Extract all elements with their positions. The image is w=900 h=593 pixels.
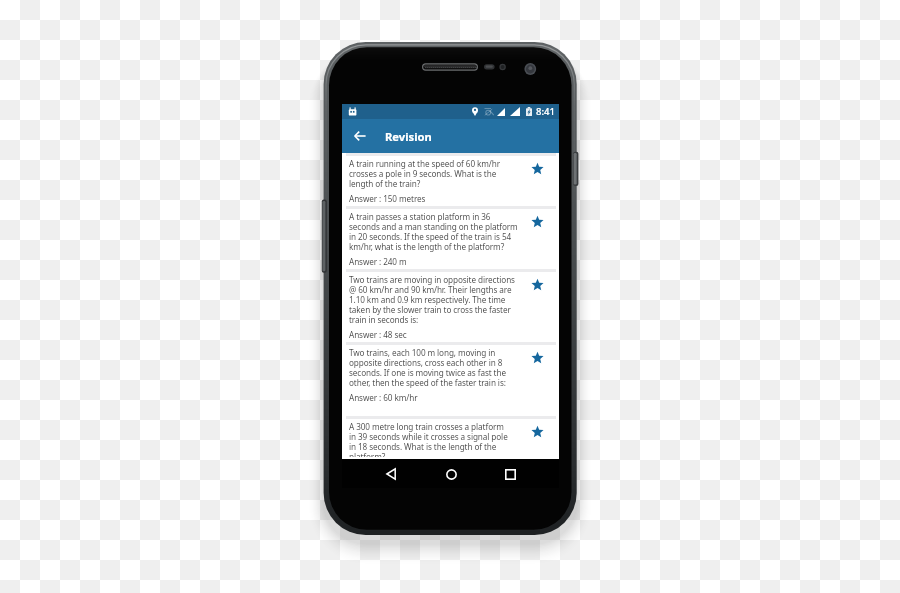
button[interactable]: Back [378, 461, 404, 487]
button[interactable]: Recent apps [497, 461, 523, 487]
staticText: Answer : 240 m [349, 256, 407, 267]
button[interactable]: A 300 metre long train crosses a platfor… [342, 419, 559, 459]
staticText: 8:41 [536, 105, 555, 118]
staticText: A 300 metre long train crosses a platfor… [349, 421, 508, 457]
button[interactable]: Home [438, 461, 464, 487]
staticText: Two trains, each 100 m long, moving in o… [349, 347, 506, 388]
button[interactable]: Two trains are moving in opposite direct… [342, 272, 559, 342]
button[interactable]: A train running at the speed of 60 km/hr… [342, 156, 559, 206]
staticText: A train running at the speed of 60 km/hr… [349, 158, 501, 189]
staticText: Two trains are moving in opposite direct… [349, 274, 515, 325]
button[interactable]: Two trains, each 100 m long, moving in o… [342, 345, 559, 416]
button[interactable]: Navigate up [348, 124, 372, 148]
button[interactable]: A train passes a station platform in 36 … [342, 209, 559, 269]
staticText: A train passes a station platform in 36 … [349, 211, 518, 252]
staticText: Answer : 150 metres [349, 193, 426, 204]
staticText: Answer : 60 km/hr [349, 392, 418, 403]
staticText: Revision [385, 129, 432, 144]
staticText: Answer : 48 sec [349, 329, 407, 340]
